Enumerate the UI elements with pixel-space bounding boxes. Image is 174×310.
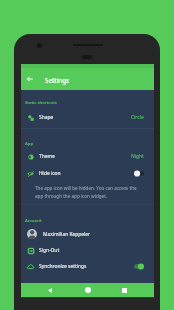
staticText: Maximilian Keppeler <box>43 231 91 238</box>
button[interactable]: Recent apps <box>106 283 143 297</box>
button[interactable]: Maximilian Keppeler <box>21 226 154 242</box>
staticText: Settings <box>45 76 70 84</box>
button[interactable]: Back <box>31 283 69 297</box>
button[interactable]: Navigate back <box>23 72 37 86</box>
staticText: Theme <box>39 153 55 160</box>
button[interactable]: Sign-Out <box>21 242 154 258</box>
button[interactable]: Synchronize settings <box>21 258 154 274</box>
staticText: The app icon will be hidden. You can acc… <box>35 185 141 199</box>
staticText: Shape <box>39 114 54 121</box>
staticText: Hide icon <box>39 170 61 177</box>
staticText: App <box>25 140 34 146</box>
button[interactable]: Hide icon <box>21 165 154 181</box>
staticText: Circle <box>131 114 144 121</box>
button[interactable]: Theme <box>21 148 154 164</box>
staticText: Night <box>131 153 144 160</box>
button[interactable]: Home <box>69 283 106 297</box>
button[interactable]: Shape <box>21 109 154 125</box>
staticText: Account <box>25 217 42 223</box>
staticText: Synchronize settings <box>39 263 87 270</box>
staticText: Sign-Out <box>39 247 60 254</box>
staticText: Static shortcuts <box>25 99 57 105</box>
